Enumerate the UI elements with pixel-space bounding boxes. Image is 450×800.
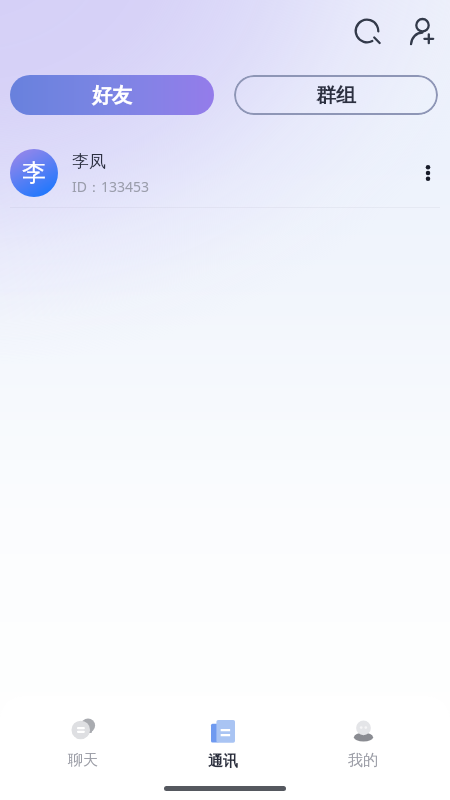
button[interactable]: 好友 [10, 75, 214, 115]
staticText: ID：133453 [72, 177, 150, 196]
staticText: 通讯 [208, 752, 238, 771]
staticText: 李 [22, 158, 46, 188]
staticText: 我的 [348, 751, 378, 770]
staticText: 李凤 [72, 151, 106, 172]
button[interactable]: 聊天 [12, 696, 153, 768]
staticText: 聊天 [68, 751, 98, 770]
button[interactable]: Search [345, 9, 389, 53]
button[interactable]: 群组 [234, 75, 438, 115]
button[interactable]: 我的 [293, 696, 433, 768]
button[interactable]: Add friend [400, 9, 444, 53]
button[interactable]: More options [408, 153, 448, 193]
button[interactable]: 李 [0, 144, 450, 202]
button[interactable]: 通讯 [153, 696, 293, 768]
staticText: 群组 [316, 83, 356, 108]
staticText: 好友 [92, 83, 132, 108]
